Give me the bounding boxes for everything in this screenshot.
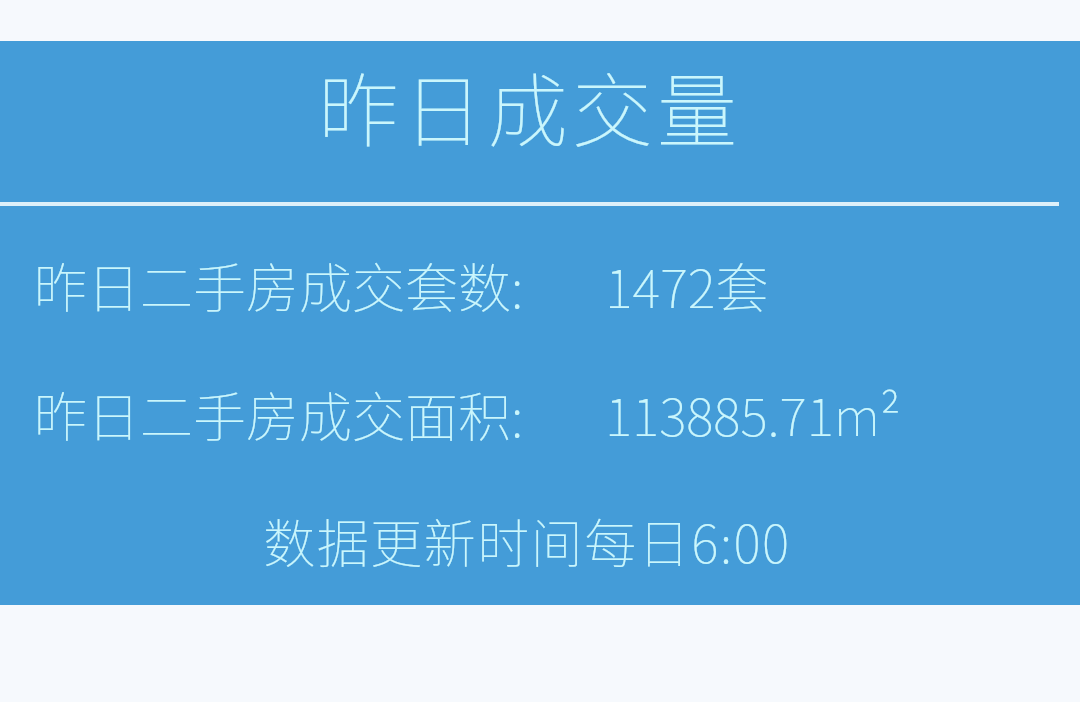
button[interactable]: 昨日二手房成交面积: — [0, 369, 1080, 451]
staticText: 昨日二手房成交面积: — [34, 376, 524, 453]
button[interactable]: 昨日成交量 — [0, 41, 1080, 605]
button[interactable]: 昨日二手房成交套数: — [0, 240, 1080, 322]
staticText: 昨日二手房成交套数: — [34, 247, 524, 324]
staticText: 1472套 — [605, 247, 769, 324]
staticText: 113885.71m² — [605, 376, 901, 451]
staticText: 数据更新时间每日6:00 — [0, 503, 1067, 578]
staticText: 昨日成交量 — [0, 47, 1070, 163]
